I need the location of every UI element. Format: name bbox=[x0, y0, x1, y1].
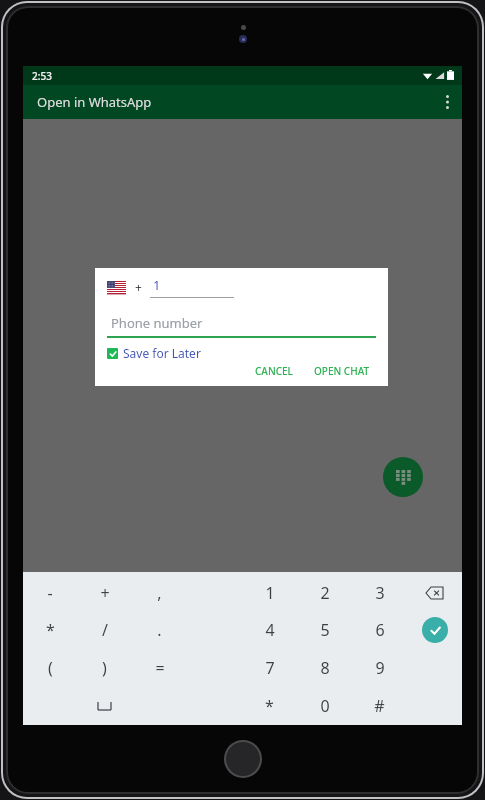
staticText: 2 bbox=[320, 582, 330, 604]
staticText: 5 bbox=[320, 619, 330, 641]
button[interactable]: More options bbox=[432, 85, 462, 119]
button[interactable]: CANCEL bbox=[249, 361, 299, 378]
button[interactable]: 6 bbox=[352, 611, 407, 649]
button[interactable]: 0 bbox=[297, 687, 352, 725]
staticText: Open in WhatsApp bbox=[37, 93, 152, 111]
button[interactable]: . bbox=[132, 611, 187, 649]
staticText: 3 bbox=[375, 582, 385, 604]
button[interactable]: - bbox=[23, 574, 77, 611]
staticText: CANCEL bbox=[255, 364, 293, 375]
staticText: = bbox=[155, 657, 165, 679]
staticText: 2:53 bbox=[32, 69, 52, 83]
button[interactable]: OPEN CHAT bbox=[308, 361, 376, 378]
staticText: + bbox=[135, 279, 142, 295]
staticText: 0 bbox=[320, 695, 330, 717]
staticText: 7 bbox=[265, 657, 275, 679]
button[interactable]: 8 bbox=[297, 649, 352, 687]
staticText: + bbox=[100, 582, 110, 604]
button[interactable]: + bbox=[77, 574, 132, 611]
button[interactable]: ) bbox=[77, 649, 132, 687]
staticText: OPEN CHAT bbox=[314, 364, 370, 375]
button[interactable]: 5 bbox=[297, 611, 352, 649]
other: Enter bbox=[422, 617, 448, 643]
button[interactable]: 4 bbox=[242, 611, 297, 649]
button[interactable]: 1 bbox=[242, 574, 297, 611]
button[interactable]: Phone number bbox=[107, 314, 376, 338]
button[interactable]: 9 bbox=[352, 649, 407, 687]
button[interactable]: Backspace bbox=[407, 574, 462, 611]
button[interactable]: 3 bbox=[352, 574, 407, 611]
staticText: Save for Later bbox=[123, 345, 201, 361]
staticText: 9 bbox=[375, 657, 385, 679]
staticText: 1 bbox=[265, 582, 275, 604]
button[interactable]: = bbox=[132, 649, 187, 687]
button[interactable]: ( bbox=[23, 649, 77, 687]
staticText: 4 bbox=[265, 619, 275, 641]
button[interactable]: # bbox=[352, 687, 407, 725]
button[interactable]: Save for Later bbox=[107, 345, 201, 361]
staticText: - bbox=[47, 582, 53, 604]
staticText: * bbox=[46, 619, 55, 641]
staticText: # bbox=[374, 695, 385, 717]
other: Backspace bbox=[426, 587, 443, 599]
staticText: 1 bbox=[153, 276, 161, 294]
button[interactable]: * bbox=[242, 687, 297, 725]
staticText: * bbox=[265, 695, 274, 717]
button[interactable]: * bbox=[23, 611, 77, 649]
staticText: 8 bbox=[320, 657, 330, 679]
button[interactable]: Dialpad bbox=[383, 457, 423, 497]
staticText: . bbox=[157, 619, 162, 641]
button[interactable]: Enter bbox=[407, 611, 462, 649]
button[interactable]: 2 bbox=[297, 574, 352, 611]
button[interactable]: 7 bbox=[242, 649, 297, 687]
staticText: , bbox=[157, 582, 162, 604]
staticText: ) bbox=[102, 657, 107, 679]
staticText: / bbox=[102, 619, 108, 641]
button[interactable] bbox=[77, 687, 132, 725]
staticText: 6 bbox=[375, 619, 385, 641]
staticText: Phone number bbox=[111, 314, 203, 332]
button[interactable]: / bbox=[77, 611, 132, 649]
button[interactable]: , bbox=[132, 574, 187, 611]
staticText: ( bbox=[48, 657, 53, 679]
